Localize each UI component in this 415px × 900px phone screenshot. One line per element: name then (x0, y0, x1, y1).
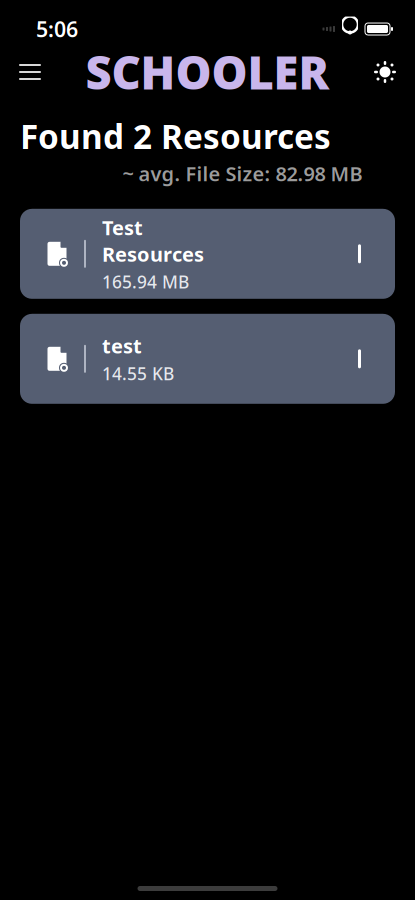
staticText: Test Resources (102, 214, 204, 267)
button[interactable]: Toggle appearance (363, 50, 407, 94)
staticText: SCHOOLER (85, 42, 329, 102)
staticText: 5:06 (36, 15, 78, 43)
staticText: Found 2 Resources (20, 114, 331, 158)
button[interactable]: Test Resources (20, 209, 395, 299)
staticText: 165.94 MB (102, 270, 189, 293)
button[interactable]: test (20, 314, 395, 404)
button[interactable]: Menu (8, 50, 52, 94)
staticText: 14.55 KB (102, 362, 174, 385)
staticText: test (102, 332, 142, 359)
staticText: ~ avg. File Size: 82.98 MB (122, 160, 362, 187)
